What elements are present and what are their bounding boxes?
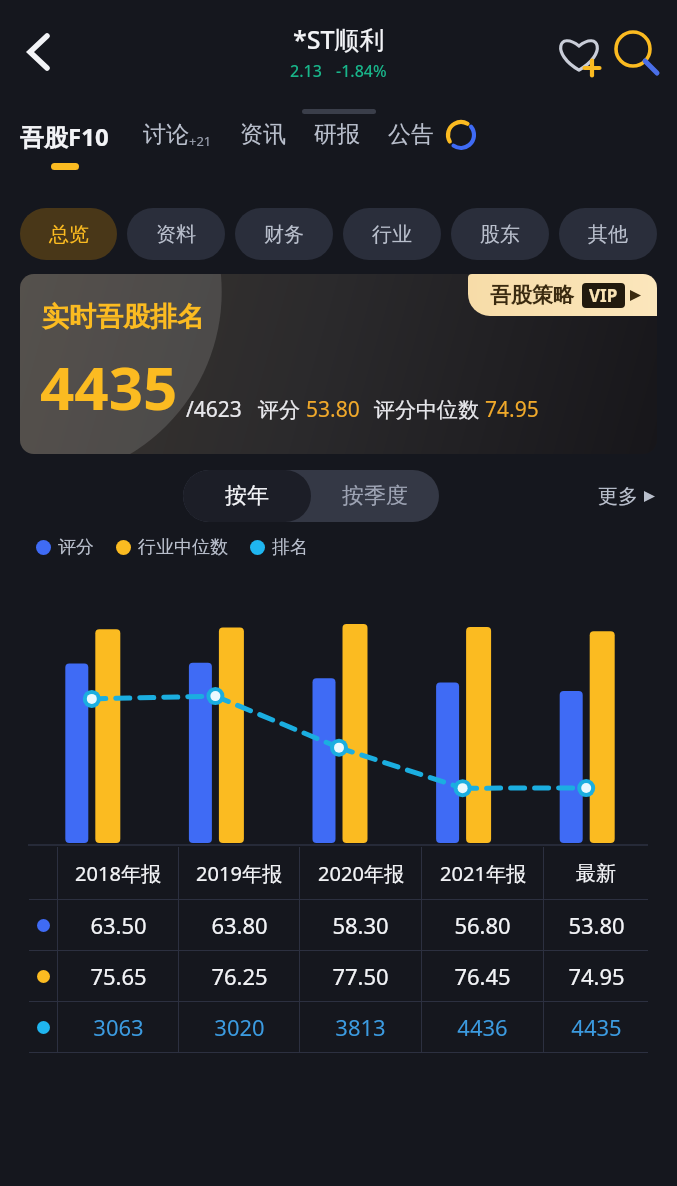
staticText: 74.95 — [485, 395, 539, 424]
staticText: 3063 — [93, 1012, 144, 1042]
staticText: 行业中位数 — [138, 536, 228, 559]
staticText: 更多 — [598, 484, 638, 509]
button[interactable]: Refresh — [444, 118, 478, 152]
staticText: 总览 — [49, 222, 89, 247]
staticText: 其他 — [588, 222, 628, 247]
button[interactable]: 财务 — [235, 208, 333, 260]
button[interactable]: 资料 — [127, 208, 225, 260]
staticText: 76.45 — [454, 961, 511, 991]
button[interactable]: Add to favorites — [551, 24, 607, 80]
staticText: 2021年报 — [440, 860, 526, 887]
staticText: 评分中位数 — [374, 395, 485, 424]
staticText: 63.50 — [90, 910, 147, 940]
staticText: 77.50 — [332, 961, 389, 991]
staticText: 排名 — [272, 536, 308, 559]
button[interactable]: 行业 — [343, 208, 441, 260]
button[interactable]: 按年 — [183, 470, 311, 522]
staticText: 3020 — [214, 1012, 265, 1042]
staticText: 2020年报 — [318, 860, 404, 887]
staticText: -1.84% — [336, 60, 387, 82]
staticText: 评分 — [58, 536, 94, 559]
staticText: 资料 — [156, 222, 196, 247]
staticText: /4623 — [186, 395, 242, 424]
button[interactable]: Back — [6, 28, 70, 92]
button[interactable]: 吾股策略 — [490, 282, 641, 308]
button[interactable]: 吾股策略 — [20, 274, 657, 454]
staticText: 74.95 — [568, 961, 625, 991]
staticText: *ST顺利 — [293, 22, 385, 56]
staticText: 4436 — [457, 1012, 508, 1042]
staticText: 56.80 — [454, 910, 511, 940]
staticText: 3813 — [335, 1012, 386, 1042]
staticText: 吾股策略 — [490, 282, 574, 308]
button[interactable]: 总览 — [20, 208, 117, 260]
staticText: 4435 — [571, 1012, 622, 1042]
staticText: 评分 — [258, 395, 306, 424]
button[interactable]: 股东 — [451, 208, 549, 260]
staticText: 53.80 — [568, 910, 625, 940]
staticText: VIP — [589, 284, 618, 307]
button[interactable]: 资讯 — [240, 120, 286, 149]
button[interactable]: 讨论 — [143, 120, 212, 149]
staticText: 4435 — [40, 346, 178, 428]
staticText: 财务 — [264, 222, 304, 247]
staticText: 按季度 — [342, 482, 408, 510]
staticText: 讨论 — [143, 120, 189, 149]
button[interactable]: 公告 — [388, 120, 434, 149]
staticText: 2018年报 — [75, 860, 161, 887]
button[interactable]: Search — [607, 24, 663, 80]
button[interactable]: 更多 — [598, 484, 655, 509]
staticText: 实时吾股排名 — [42, 300, 204, 334]
staticText: 行业 — [372, 222, 412, 247]
button[interactable]: 研报 — [314, 120, 360, 149]
staticText: 2.13 — [290, 60, 322, 82]
staticText: 按年 — [225, 482, 269, 510]
staticText: 53.80 — [306, 395, 360, 424]
staticText: 2019年报 — [196, 860, 282, 887]
staticText: 吾股F10 — [20, 120, 109, 153]
staticText: 股东 — [480, 222, 520, 247]
staticText: 最新 — [576, 861, 616, 886]
staticText: 76.25 — [211, 961, 268, 991]
staticText: +21 — [189, 132, 212, 150]
button[interactable]: 按季度 — [311, 470, 439, 522]
staticText: 58.30 — [332, 910, 389, 940]
staticText: 75.65 — [90, 961, 147, 991]
button[interactable]: 其他 — [559, 208, 657, 260]
staticText: 63.80 — [211, 910, 268, 940]
button[interactable]: 吾股F10 — [20, 120, 109, 170]
